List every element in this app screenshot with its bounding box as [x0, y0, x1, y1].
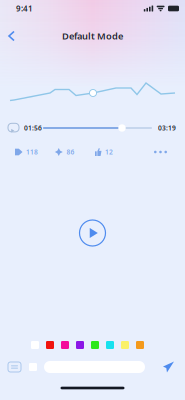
button[interactable]: Keyboard — [8, 362, 21, 372]
button[interactable]: Back — [0, 24, 24, 47]
button[interactable]: Colour — [106, 341, 114, 349]
staticText: 03:19 — [158, 124, 176, 132]
button[interactable]: 86 — [54, 148, 75, 156]
button[interactable]: Colour — [136, 341, 144, 349]
staticText: Default Mode — [62, 30, 123, 42]
button[interactable]: Play — [75, 216, 109, 250]
staticText: 01:56 — [24, 124, 42, 132]
staticText: 9:41 — [16, 3, 33, 14]
button[interactable]: Colour — [76, 341, 84, 349]
staticText: 12 — [105, 148, 113, 156]
button[interactable]: Colour — [121, 341, 129, 349]
button[interactable]: 118 — [15, 148, 38, 156]
staticText: 118 — [26, 148, 38, 156]
button[interactable]: Send — [163, 361, 174, 372]
staticText: 86 — [67, 148, 75, 156]
button[interactable]: Repeat — [8, 123, 19, 133]
button[interactable]: More — [149, 146, 172, 158]
button[interactable]: 12 — [95, 148, 113, 156]
button[interactable]: Colour — [61, 341, 69, 349]
button[interactable]: Colour — [46, 341, 54, 349]
button[interactable]: Colour — [91, 341, 99, 349]
